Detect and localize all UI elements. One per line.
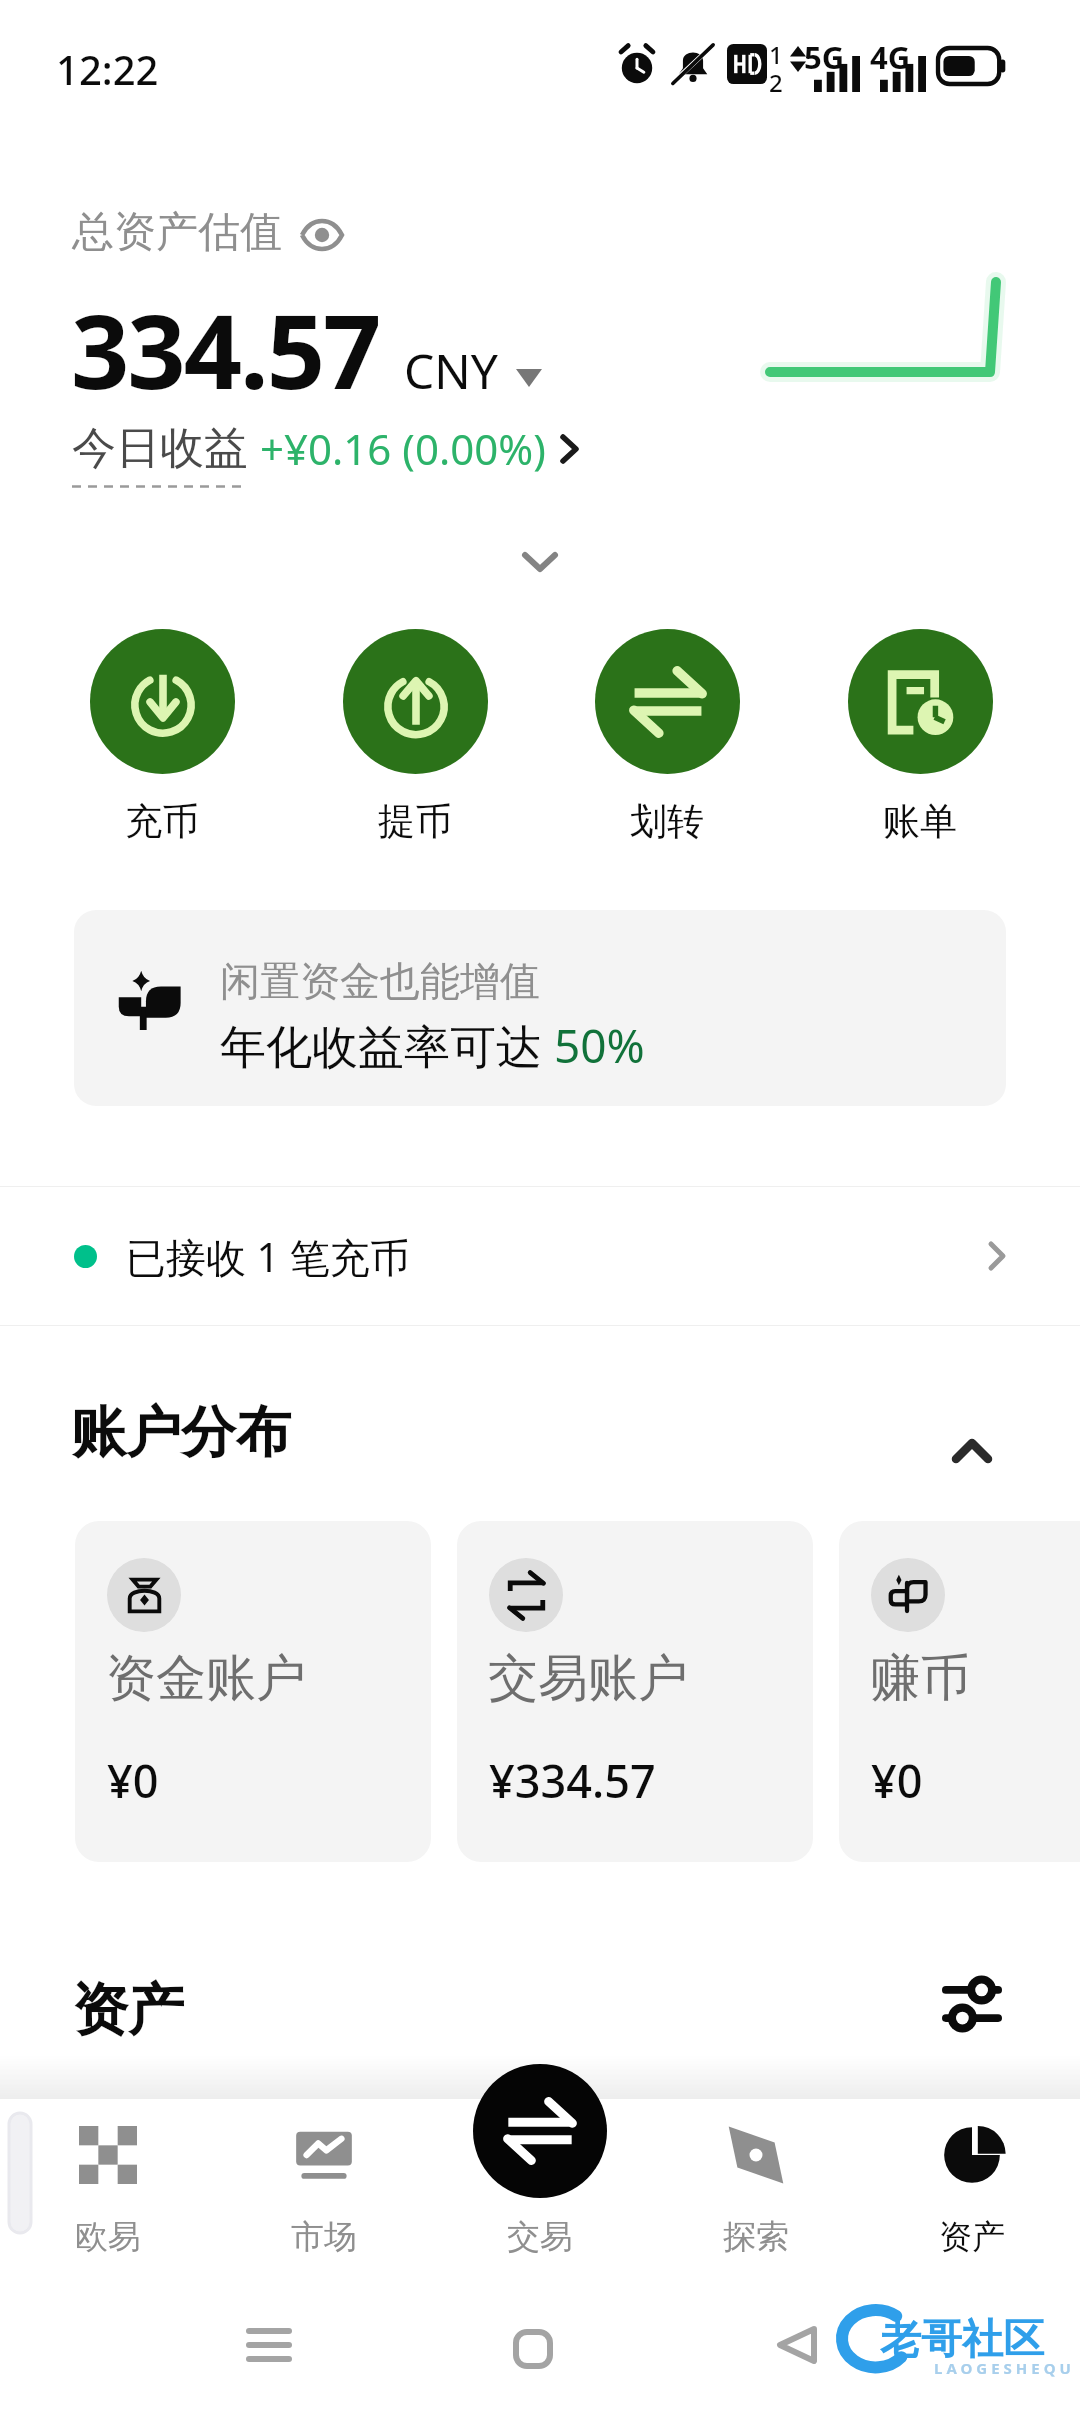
staticText: ¥0 xyxy=(871,1750,923,1811)
staticText: 资产 xyxy=(939,2216,1005,2258)
staticText: 充币 xyxy=(125,798,199,845)
button[interactable]: 探索 xyxy=(648,2100,864,2260)
staticText: +¥0.16 (0.00%) xyxy=(260,420,546,477)
staticText: 12:22 xyxy=(56,42,159,96)
staticText: 50% xyxy=(554,1014,645,1077)
button[interactable]: Expand details xyxy=(500,534,580,590)
button[interactable]: 赚币 xyxy=(839,1521,1080,1862)
button[interactable]: Filter assets xyxy=(926,1958,1018,2050)
staticText: 今日收益 xyxy=(72,421,248,476)
staticText: 年化收益率可达 xyxy=(220,1014,554,1077)
staticText: 总资产估值 xyxy=(72,206,282,259)
button[interactable]: 今日收益 xyxy=(72,420,579,477)
staticText: 账户分布 xyxy=(71,1398,291,1467)
staticText: 资金账户 xyxy=(106,1647,306,1710)
staticText: 划转 xyxy=(630,798,704,845)
staticText: 市场 xyxy=(291,2216,357,2258)
staticText: 资产 xyxy=(72,1975,184,2046)
button[interactable]: 资产 xyxy=(864,2100,1080,2260)
button[interactable]: 已接收 1 笔充币 xyxy=(0,1187,1080,1325)
staticText: 交易 xyxy=(507,2216,573,2258)
staticText: 交易账户 xyxy=(488,1647,688,1710)
button[interactable]: 闲置资金也能增值 xyxy=(74,910,1006,1106)
button[interactable]: Trade xyxy=(473,2064,607,2198)
staticText: 1 xyxy=(769,38,783,71)
button[interactable]: 提币 xyxy=(315,629,515,845)
staticText: 已接收 1 笔充币 xyxy=(126,1229,410,1284)
staticText: ¥334.57 xyxy=(489,1750,656,1811)
staticText: 赚币 xyxy=(870,1647,970,1710)
button[interactable]: 资金账户 xyxy=(75,1521,431,1862)
button[interactable]: 市场 xyxy=(216,2100,432,2260)
staticText: 334.57 xyxy=(71,280,380,419)
button[interactable]: 划转 xyxy=(567,629,767,845)
button[interactable]: 交易账户 xyxy=(457,1521,813,1862)
button[interactable]: CNY xyxy=(404,354,542,419)
staticText: 4G xyxy=(870,36,911,78)
button[interactable]: 总资产估值 xyxy=(72,206,344,259)
staticText: CNY xyxy=(404,338,498,403)
staticText: 账单 xyxy=(883,798,957,845)
button[interactable]: 账单 xyxy=(820,629,1020,845)
staticText: LAOGESHEQU xyxy=(934,2358,1075,2378)
staticText: 老哥社区 xyxy=(880,2314,1044,2366)
other: Toggle balance visibility xyxy=(300,216,344,250)
button[interactable]: Collapse section xyxy=(926,1405,1018,1497)
button[interactable]: 交易 xyxy=(432,2100,648,2260)
staticText: 2 xyxy=(769,66,783,99)
staticText: 5G xyxy=(804,36,845,78)
staticText: 探索 xyxy=(723,2216,789,2258)
staticText: 闲置资金也能增值 xyxy=(220,956,540,1006)
staticText: 欧易 xyxy=(75,2216,141,2258)
button[interactable]: 充币 xyxy=(62,629,262,845)
staticText: 提币 xyxy=(378,798,452,845)
staticText: ¥0 xyxy=(107,1750,159,1811)
button[interactable]: 欧易 xyxy=(0,2100,216,2260)
